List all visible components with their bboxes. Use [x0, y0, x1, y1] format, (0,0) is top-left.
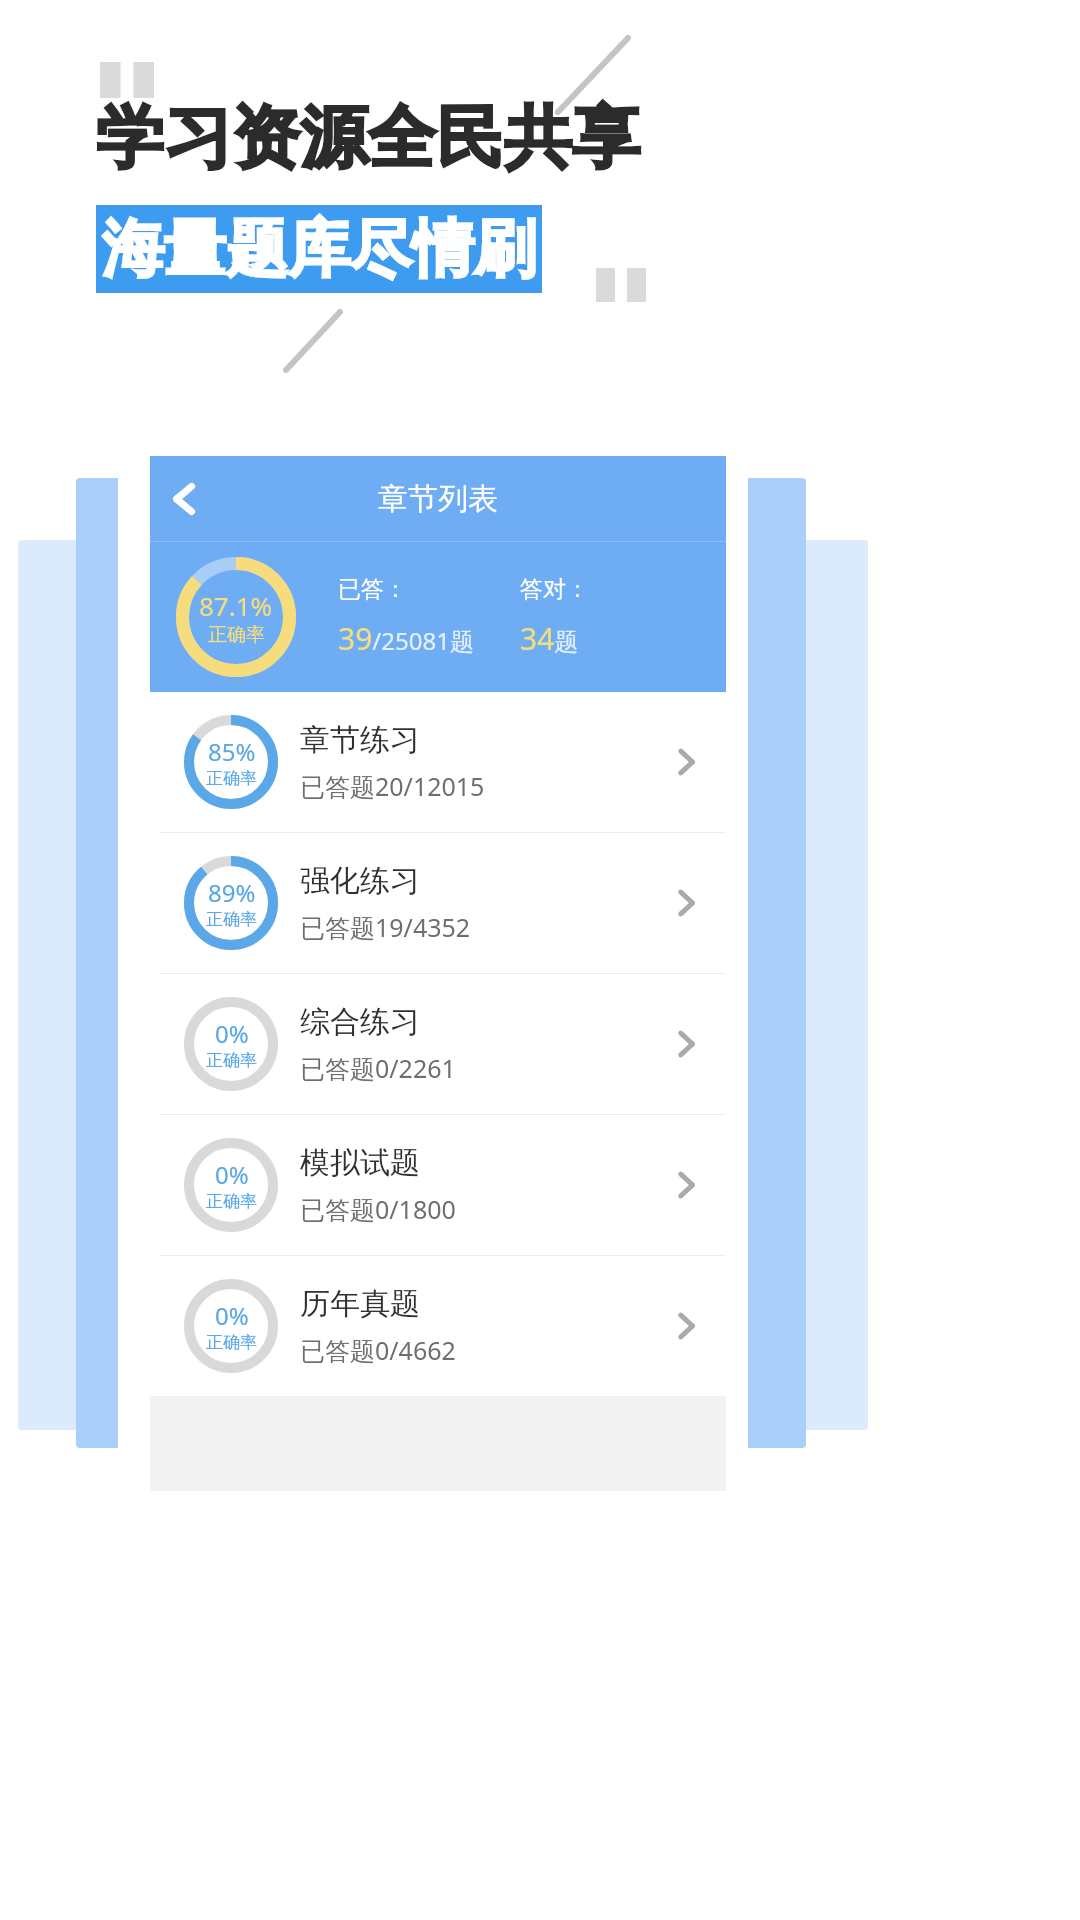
staticText: 34题: [520, 618, 579, 659]
staticText: 0%: [215, 1158, 249, 1191]
staticText: 章节列表: [378, 480, 498, 518]
staticText: 学习资源全民共享: [96, 96, 640, 182]
staticText: 正确率: [208, 623, 265, 647]
staticText: 已答题0/1800: [300, 1192, 456, 1226]
staticText: 已答题19/4352: [300, 910, 471, 944]
staticText: 0%: [215, 1017, 249, 1050]
staticText: 历年真题: [300, 1285, 420, 1323]
staticText: 章节练习: [300, 721, 420, 759]
staticText: 已答题0/2261: [300, 1051, 456, 1085]
staticText: 85%: [208, 735, 256, 768]
button[interactable]: Back: [150, 464, 220, 534]
staticText: 正确率: [206, 1050, 257, 1071]
button[interactable]: 0%: [150, 1256, 726, 1396]
staticText: 已答题0/4662: [300, 1333, 456, 1367]
button[interactable]: 0%: [150, 974, 726, 1114]
staticText: 综合练习: [300, 1003, 420, 1041]
staticText: 答对：: [520, 575, 589, 604]
staticText: 0%: [215, 1299, 249, 1332]
staticText: 海量题库尽情刷: [102, 210, 536, 288]
button[interactable]: 85%: [150, 692, 726, 832]
button[interactable]: 89%: [150, 833, 726, 973]
staticText: 正确率: [206, 768, 257, 789]
staticText: 39/25081题: [338, 618, 474, 659]
staticText: 强化练习: [300, 862, 420, 900]
staticText: 正确率: [206, 909, 257, 930]
staticText: 已答题20/12015: [300, 769, 485, 803]
staticText: 正确率: [206, 1191, 257, 1212]
staticText: 正确率: [206, 1332, 257, 1353]
staticText: 87.1%: [199, 588, 273, 623]
button[interactable]: 0%: [150, 1115, 726, 1255]
staticText: 89%: [208, 876, 256, 909]
staticText: 已答：: [338, 575, 407, 604]
staticText: 模拟试题: [300, 1144, 420, 1182]
